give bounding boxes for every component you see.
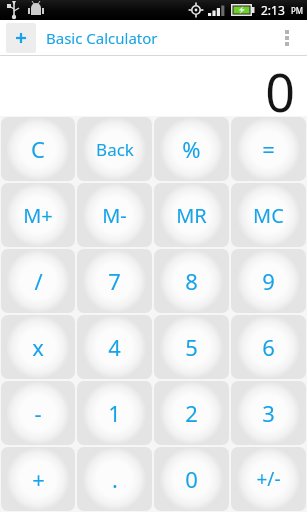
button[interactable]: / xyxy=(1,249,75,313)
button[interactable]: 9 xyxy=(231,249,306,313)
button[interactable]: 5 xyxy=(154,315,229,379)
staticText: +/- xyxy=(256,466,281,492)
button[interactable]: C xyxy=(1,117,75,181)
staticText: 4 xyxy=(108,332,121,362)
button[interactable]: 4 xyxy=(77,315,152,379)
staticText: PM xyxy=(291,5,304,16)
button[interactable]: MC xyxy=(231,183,306,247)
button[interactable]: + xyxy=(1,447,75,511)
staticText: 0 xyxy=(185,464,198,494)
button[interactable]: . xyxy=(77,447,152,511)
button[interactable]: +/- xyxy=(231,447,306,511)
button[interactable]: M+ xyxy=(1,183,75,247)
staticText: Basic Calculator xyxy=(46,28,158,48)
staticText: MC xyxy=(253,202,284,229)
button[interactable]: Back xyxy=(77,117,152,181)
button[interactable]: 3 xyxy=(231,381,306,445)
staticText: 2 xyxy=(185,398,198,428)
button[interactable]: 7 xyxy=(77,249,152,313)
button[interactable]: 8 xyxy=(154,249,229,313)
staticText: 8 xyxy=(185,266,198,296)
button[interactable]: 1 xyxy=(77,381,152,445)
button[interactable]: More options xyxy=(272,20,302,55)
staticText: = xyxy=(262,134,275,164)
staticText: 2:13 xyxy=(261,2,285,18)
staticText: MR xyxy=(176,202,207,229)
staticText: . xyxy=(112,464,118,494)
button[interactable]: - xyxy=(1,381,75,445)
staticText: 3 xyxy=(262,398,275,428)
staticText: 9 xyxy=(262,266,275,296)
button[interactable]: 6 xyxy=(231,315,306,379)
staticText: M- xyxy=(102,202,127,229)
button[interactable]: 2 xyxy=(154,381,229,445)
staticText: 0 xyxy=(265,56,295,114)
button[interactable]: 0 xyxy=(154,447,229,511)
button[interactable]: Add xyxy=(6,23,36,53)
staticText: 1 xyxy=(108,398,121,428)
button[interactable]: % xyxy=(154,117,229,181)
staticText: - xyxy=(34,398,42,428)
staticText: 7 xyxy=(108,266,121,296)
staticText: 6 xyxy=(262,332,275,362)
staticText: % xyxy=(182,134,201,164)
staticText: / xyxy=(34,266,43,296)
staticText: + xyxy=(32,464,45,494)
button[interactable]: = xyxy=(231,117,306,181)
staticText: x xyxy=(32,332,44,362)
staticText: M+ xyxy=(23,202,53,229)
staticText: Back xyxy=(96,138,134,161)
staticText: 5 xyxy=(185,332,198,362)
button[interactable]: M- xyxy=(77,183,152,247)
staticText: C xyxy=(31,134,45,164)
button[interactable]: MR xyxy=(154,183,229,247)
button[interactable]: x xyxy=(1,315,75,379)
